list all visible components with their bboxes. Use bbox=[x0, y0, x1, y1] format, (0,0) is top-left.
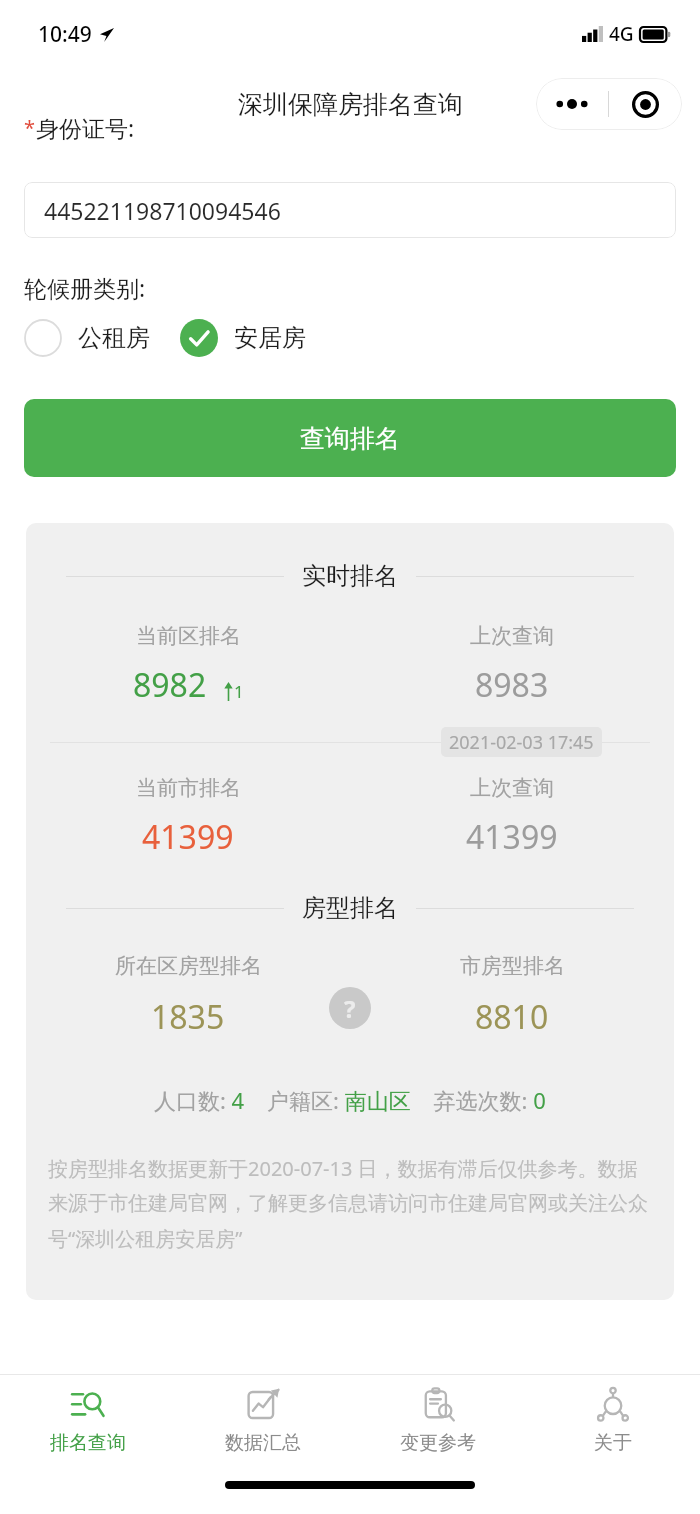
staticText: 41399 bbox=[142, 815, 234, 859]
staticText: 市房型排名 bbox=[460, 953, 565, 979]
staticText: 2021-02-03 17:45 bbox=[449, 730, 594, 754]
staticText: 公租房 bbox=[78, 323, 150, 353]
staticText: ? bbox=[344, 992, 356, 1025]
staticText: 上次查询 bbox=[470, 775, 554, 801]
staticText: 排名查询 bbox=[50, 1431, 126, 1455]
staticText: 数据汇总 bbox=[225, 1431, 301, 1455]
staticText: 轮候册类别: bbox=[24, 272, 146, 303]
staticText: 安居房 bbox=[234, 323, 306, 353]
button[interactable]: 关于 bbox=[525, 1375, 700, 1467]
staticText: 1 bbox=[234, 680, 244, 703]
staticText: 8810 bbox=[475, 995, 549, 1039]
staticText: 查询排名 bbox=[300, 423, 400, 454]
button[interactable]: 查询排名 bbox=[24, 399, 676, 477]
staticText: 上次查询 bbox=[470, 623, 554, 649]
button[interactable]: Help bbox=[329, 987, 371, 1029]
button[interactable]: More bbox=[536, 78, 608, 130]
staticText: * bbox=[24, 114, 36, 141]
staticText: 8983 bbox=[475, 663, 549, 707]
button[interactable]: 变更参考 bbox=[350, 1375, 525, 1467]
staticText: 人口数: 4 户籍区: 南山区 弃选次数: 0 bbox=[154, 1085, 546, 1115]
staticText: 身份证号: bbox=[36, 112, 135, 143]
staticText: 41399 bbox=[466, 815, 558, 859]
staticText: 当前市排名 bbox=[136, 775, 241, 801]
staticText: 房型排名 bbox=[302, 893, 398, 923]
staticText: 按房型排名数据更新于2020-07-13 日，数据有滞后仅供参考。数据来源于市住… bbox=[48, 1155, 652, 1252]
button[interactable]: Close bbox=[609, 78, 682, 130]
button[interactable]: 公租房 bbox=[24, 319, 150, 357]
staticText: 关于 bbox=[594, 1431, 632, 1455]
staticText: 实时排名 bbox=[302, 561, 398, 591]
button[interactable]: 排名查询 bbox=[0, 1375, 175, 1467]
button[interactable]: 安居房 bbox=[180, 319, 306, 357]
staticText: 所在区房型排名 bbox=[115, 953, 262, 979]
button[interactable]: 445221198710094546 bbox=[24, 182, 676, 238]
staticText: 8982 bbox=[133, 663, 207, 707]
staticText: 1835 bbox=[151, 995, 225, 1039]
staticText: 445221198710094546 bbox=[44, 195, 281, 226]
button[interactable]: 数据汇总 bbox=[175, 1375, 350, 1467]
staticText: 10:49 bbox=[38, 20, 92, 49]
staticText: 变更参考 bbox=[400, 1431, 476, 1455]
staticText: 当前区排名 bbox=[136, 623, 241, 649]
staticText: 4G bbox=[609, 21, 634, 47]
staticText: 深圳保障房排名查询 bbox=[238, 89, 463, 120]
